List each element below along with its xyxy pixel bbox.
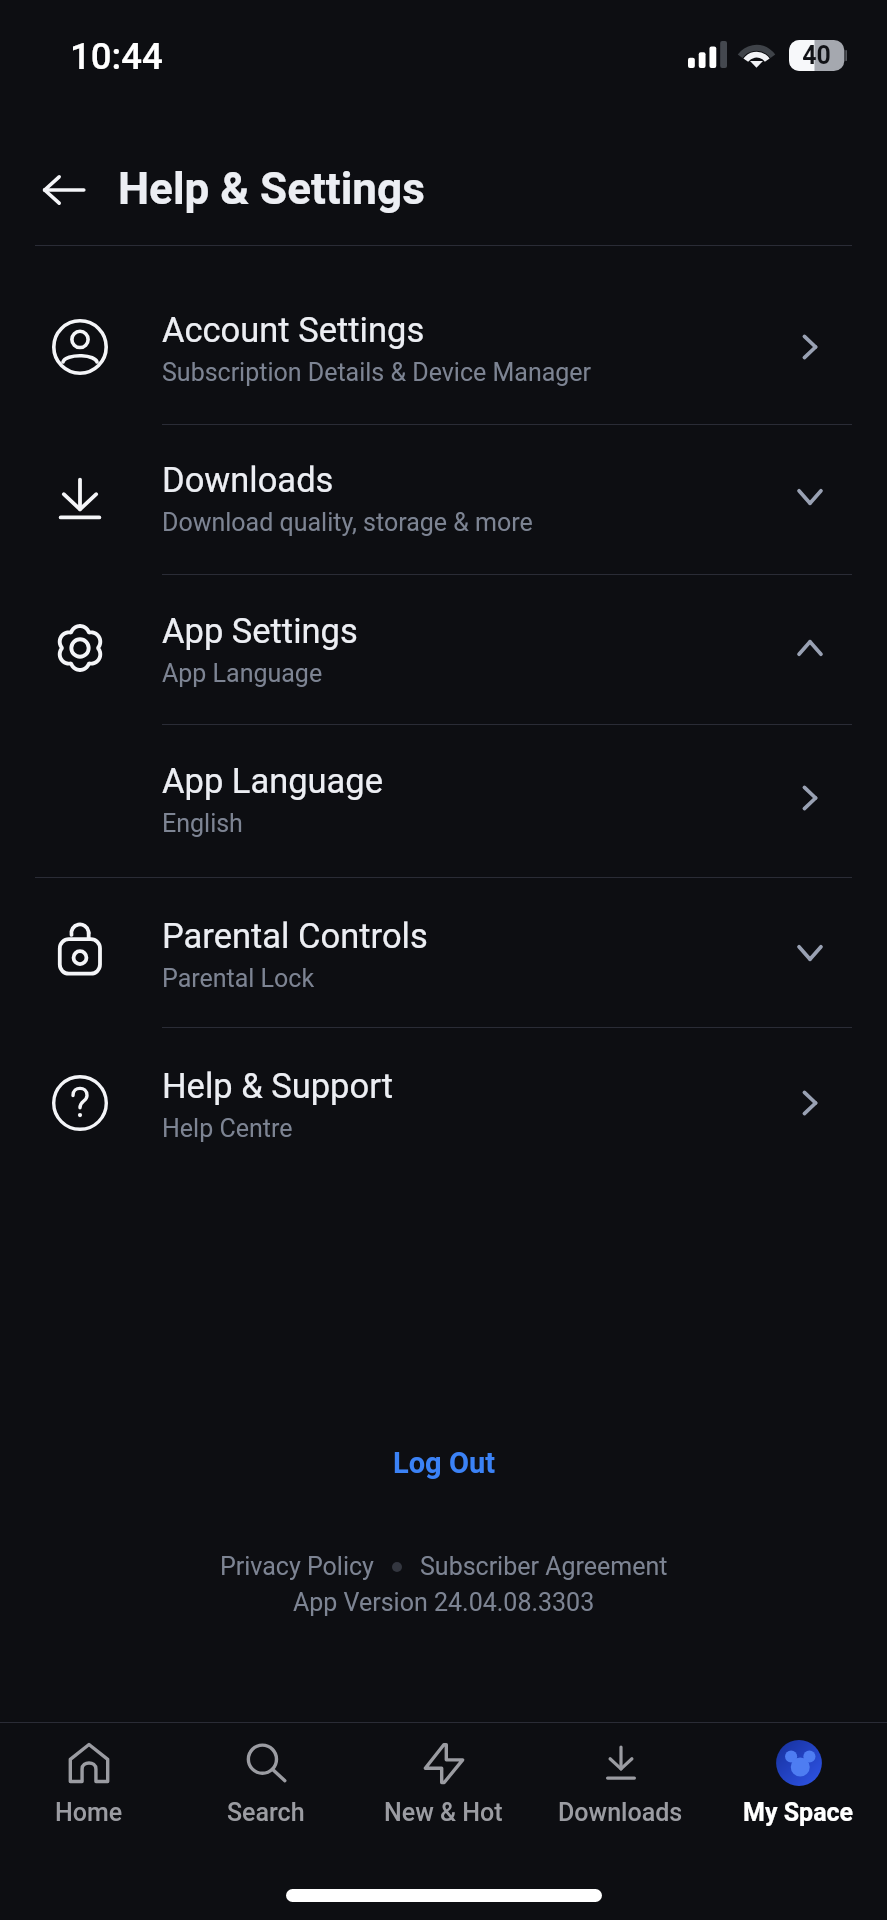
staticText: Account Settings [162,310,425,350]
staticText: Privacy Policy [220,1552,374,1581]
staticText: 40 [789,41,844,70]
staticText: App Language [162,659,323,688]
staticText: App Settings [162,611,358,651]
staticText: Parental Controls [162,916,428,956]
staticText: Subscriber Agreement [420,1552,668,1581]
staticText: App Language [162,761,384,801]
staticText: Parental Lock [162,964,315,993]
button[interactable]: Help & Support [0,1028,887,1178]
button[interactable]: Account Settings [0,272,887,422]
button[interactable]: Downloads [532,1722,709,1842]
staticText: My Space [743,1798,854,1827]
staticText: 10:44 [70,35,163,78]
staticText: English [162,809,243,838]
button[interactable]: Back [24,155,104,225]
button[interactable]: New & Hot [355,1722,532,1842]
button[interactable]: App Language [0,723,887,873]
staticText: Help & Settings [118,163,425,215]
button[interactable]: Parental Controls [0,878,887,1028]
button[interactable]: Privacy Policy [220,1549,374,1584]
staticText: Subscription Details & Device Manager [162,358,592,387]
staticText: Search [227,1798,305,1827]
button[interactable]: App Settings [0,573,887,723]
button[interactable]: Downloads [0,422,887,572]
staticText: Help Centre [162,1114,293,1143]
staticText: Log Out [393,1446,495,1480]
staticText: Download quality, storage & more [162,508,533,537]
button[interactable]: Home [0,1722,177,1842]
button[interactable]: Log Out [370,1435,518,1491]
staticText: App Version 24.04.08.3303 [293,1588,595,1617]
staticText: Help & Support [162,1066,393,1106]
button[interactable]: Subscriber Agreement [420,1549,668,1584]
staticText: Downloads [162,460,334,500]
staticText: New & Hot [384,1798,503,1827]
staticText: Downloads [558,1798,683,1827]
staticText: Home [55,1798,123,1827]
button[interactable]: Search [177,1722,354,1842]
button[interactable]: My Space [710,1722,887,1842]
